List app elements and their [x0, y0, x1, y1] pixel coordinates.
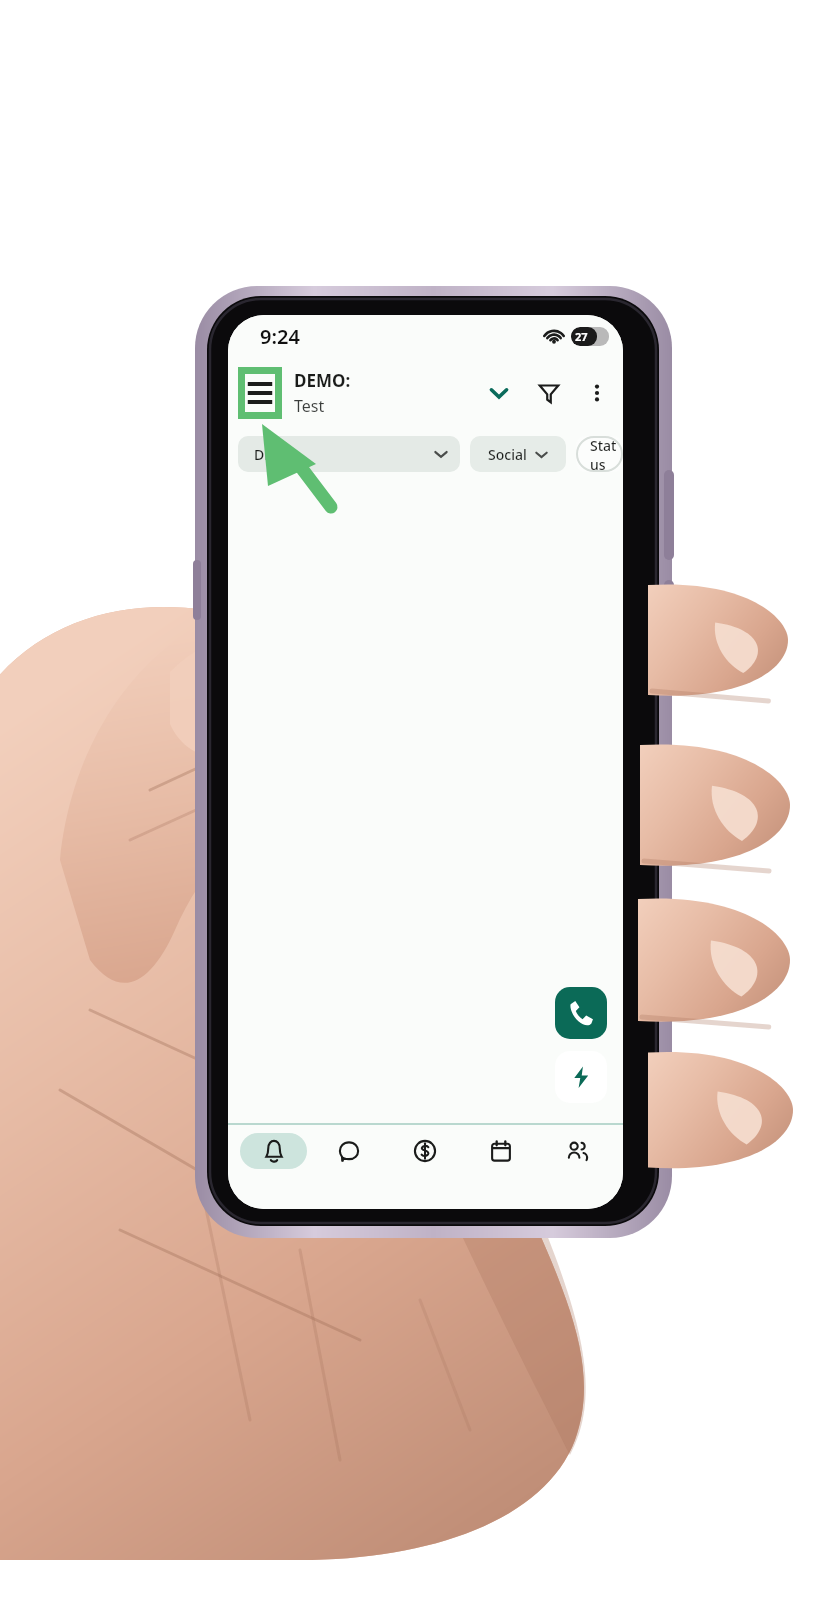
staticText: Test — [294, 395, 325, 417]
staticText: 9:24 — [260, 323, 300, 350]
button[interactable]: Payments — [391, 1133, 459, 1169]
button[interactable]: Status — [576, 436, 623, 472]
button[interactable]: Filter — [531, 375, 567, 411]
staticText: Status — [590, 436, 623, 472]
button[interactable]: Contacts — [543, 1133, 611, 1169]
staticText: 27 — [575, 329, 588, 344]
button[interactable]: Quick actions — [555, 1051, 607, 1103]
button[interactable]: Calendar — [467, 1133, 535, 1169]
button[interactable]: Call — [555, 987, 607, 1039]
button[interactable]: Open navigation menu — [238, 367, 282, 419]
button[interactable]: Social — [470, 436, 566, 472]
button[interactable]: Notifications — [240, 1133, 307, 1169]
staticText: DEMO — [254, 445, 296, 464]
button[interactable]: DEMO — [238, 436, 460, 472]
staticText: Social — [488, 445, 527, 464]
staticText: DEMO: — [294, 369, 351, 392]
button[interactable]: Messages — [315, 1133, 383, 1169]
button[interactable]: Expand — [481, 375, 517, 411]
button[interactable]: More options — [579, 375, 615, 411]
